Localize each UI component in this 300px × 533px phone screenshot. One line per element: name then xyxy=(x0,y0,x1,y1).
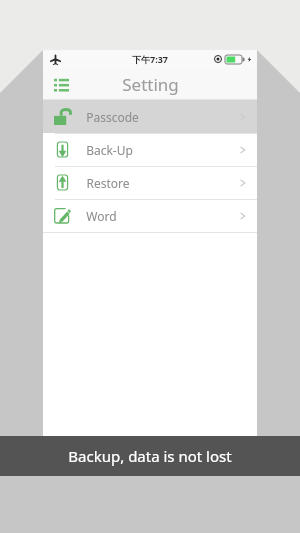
button[interactable]: Back-Up xyxy=(43,133,257,166)
staticText: Restore xyxy=(86,175,130,191)
staticText: Passcode xyxy=(86,109,139,125)
button[interactable]: Restore xyxy=(43,166,257,199)
staticText: Back-Up xyxy=(86,142,133,158)
button[interactable]: Passcode xyxy=(43,100,257,133)
staticText: Setting xyxy=(122,73,179,96)
button[interactable]: Word xyxy=(43,199,257,232)
other: Airplane mode xyxy=(50,54,61,65)
staticText: Backup, data is not lost xyxy=(68,446,232,466)
button[interactable]: Menu xyxy=(46,69,76,99)
staticText: 下午7:37 xyxy=(132,53,168,65)
staticText: Word xyxy=(86,208,117,224)
